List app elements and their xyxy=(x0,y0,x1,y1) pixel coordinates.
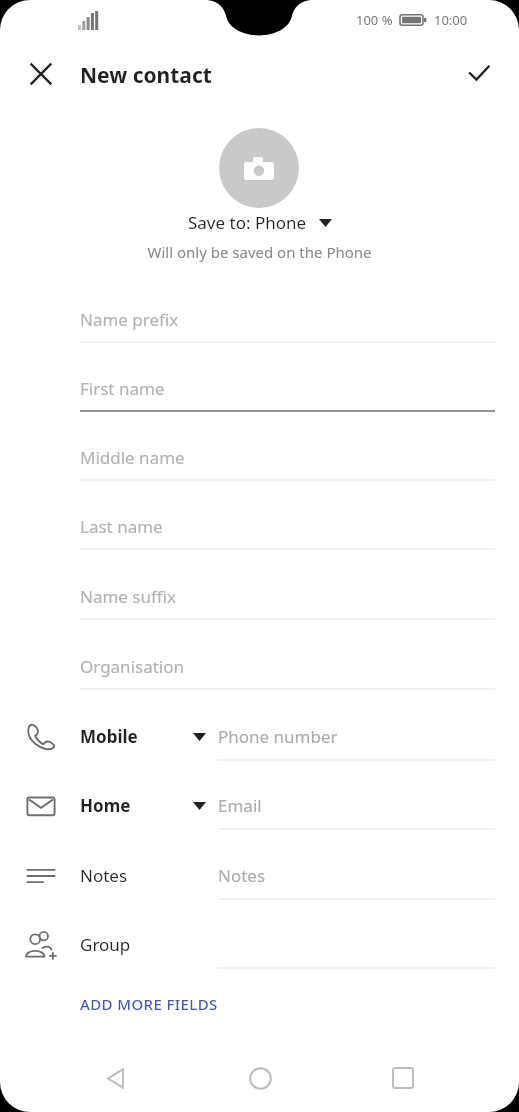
button[interactable]: Organisation xyxy=(80,645,495,689)
staticText: 100 % xyxy=(356,11,393,29)
staticText: First name xyxy=(80,377,165,400)
staticText: Notes xyxy=(80,864,128,887)
button[interactable]: Home xyxy=(232,1050,288,1106)
button[interactable]: Save to: Phone xyxy=(0,211,519,234)
button[interactable]: ADD MORE FIELDS xyxy=(64,986,234,1022)
staticText: Phone number xyxy=(218,725,338,748)
button[interactable]: Save xyxy=(455,49,503,97)
staticText: ADD MORE FIELDS xyxy=(80,994,218,1014)
staticText: Will only be saved on the Phone xyxy=(0,242,519,262)
button[interactable]: Last name xyxy=(80,505,495,549)
staticText: 10:00 xyxy=(434,11,468,29)
staticText: Notes xyxy=(218,864,266,887)
staticText: Last name xyxy=(80,515,163,538)
button[interactable]: First name xyxy=(80,367,495,411)
button[interactable]: Add photo xyxy=(219,128,299,208)
button[interactable]: Mobile xyxy=(0,703,519,771)
staticText: Email xyxy=(218,794,262,817)
button[interactable]: Close xyxy=(17,50,65,98)
button[interactable]: Recent apps xyxy=(375,1050,431,1106)
button[interactable]: Name prefix xyxy=(80,298,495,342)
button[interactable]: Name suffix xyxy=(80,575,495,619)
staticText: Save to: Phone xyxy=(188,211,307,234)
staticText: Mobile xyxy=(80,725,138,748)
button[interactable]: Back xyxy=(88,1050,144,1106)
staticText: Organisation xyxy=(80,655,185,678)
staticText: Name prefix xyxy=(80,308,179,331)
staticText: Home xyxy=(80,794,131,817)
button[interactable]: Group xyxy=(0,911,519,979)
staticText: Name suffix xyxy=(80,585,177,608)
staticText: Group xyxy=(80,933,131,956)
button[interactable]: Middle name xyxy=(80,436,495,480)
staticText: Middle name xyxy=(80,446,185,469)
button[interactable]: Notes xyxy=(0,842,519,910)
button[interactable]: Home xyxy=(0,772,519,840)
staticText: New contact xyxy=(80,61,212,90)
